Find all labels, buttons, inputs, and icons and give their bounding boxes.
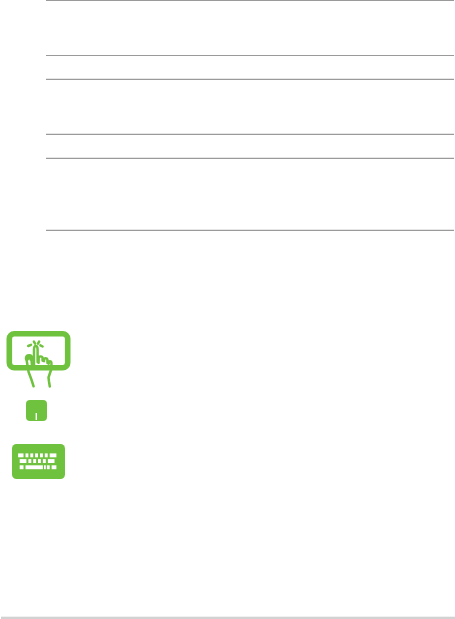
button[interactable]: Tap on touch screen	[4, 326, 76, 392]
button[interactable]: Keyboard	[12, 444, 65, 479]
button[interactable]: Touchpad	[26, 400, 47, 421]
